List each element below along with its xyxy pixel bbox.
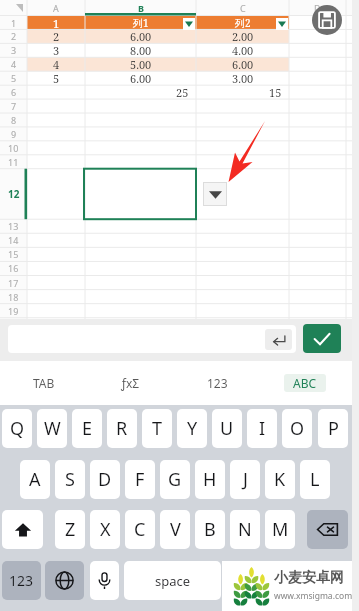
staticText: A bbox=[29, 467, 41, 492]
button[interactable]: K bbox=[265, 460, 295, 499]
button[interactable]: O bbox=[282, 409, 312, 448]
button[interactable]: F bbox=[125, 460, 155, 499]
button[interactable]: M bbox=[265, 510, 295, 549]
button[interactable]: C bbox=[125, 510, 155, 549]
button[interactable]: ABC bbox=[284, 374, 326, 392]
button[interactable]: 14 bbox=[0, 233, 27, 247]
button[interactable]: Z bbox=[55, 510, 85, 549]
staticText: 10 bbox=[8, 142, 19, 154]
staticText: 2 bbox=[11, 30, 17, 42]
staticText: 11 bbox=[8, 156, 19, 168]
button[interactable]: Y bbox=[177, 409, 207, 448]
button[interactable]: ƒxΣ bbox=[87, 361, 174, 405]
button[interactable]: S bbox=[55, 460, 85, 499]
button[interactable]: 5 bbox=[0, 71, 27, 85]
button[interactable]: Filter bbox=[276, 18, 288, 30]
button[interactable]: L bbox=[300, 460, 330, 499]
button[interactable]: 8 bbox=[0, 113, 27, 127]
staticText: 9 bbox=[11, 128, 17, 140]
button[interactable]: 18 bbox=[0, 290, 27, 304]
staticText: Q bbox=[10, 416, 25, 441]
button[interactable]: 19 bbox=[0, 304, 27, 318]
button[interactable]: E bbox=[72, 409, 102, 448]
button[interactable]: U bbox=[212, 409, 242, 448]
button[interactable]: A bbox=[20, 460, 50, 499]
staticText: V bbox=[170, 517, 181, 542]
staticText: 1 bbox=[53, 16, 60, 30]
button[interactable]: 9 bbox=[0, 127, 27, 141]
button[interactable]: 17 bbox=[0, 276, 27, 290]
button[interactable]: Return bbox=[273, 561, 347, 600]
button[interactable]: space bbox=[124, 561, 221, 600]
button[interactable]: B bbox=[85, 0, 196, 16]
button[interactable]: Confirm bbox=[303, 324, 341, 353]
staticText: A bbox=[53, 2, 59, 14]
button[interactable]: 3 bbox=[0, 43, 27, 57]
button[interactable]: G bbox=[160, 460, 190, 499]
staticText: J bbox=[243, 467, 248, 492]
button[interactable]: 123 bbox=[174, 361, 261, 405]
button[interactable]: C bbox=[196, 0, 289, 16]
staticText: TAB bbox=[33, 375, 55, 391]
button[interactable]: N bbox=[230, 510, 260, 549]
button[interactable]: Enter bbox=[265, 329, 292, 350]
button[interactable]: X bbox=[90, 510, 120, 549]
staticText: T bbox=[152, 416, 163, 441]
staticText: K bbox=[274, 467, 286, 492]
button[interactable]: 1 bbox=[0, 16, 27, 30]
staticText: W bbox=[44, 416, 61, 441]
staticText: U bbox=[220, 416, 234, 441]
staticText: 5.00 bbox=[130, 57, 152, 71]
staticText: L bbox=[310, 467, 320, 492]
staticText: 8.00 bbox=[130, 43, 152, 57]
staticText: 7 bbox=[11, 100, 17, 112]
staticText: G bbox=[168, 467, 182, 492]
button[interactable]: H bbox=[195, 460, 225, 499]
button[interactable]: R bbox=[107, 409, 137, 448]
button[interactable]: V bbox=[160, 510, 190, 549]
button[interactable]: T bbox=[142, 409, 172, 448]
button[interactable]: Save bbox=[312, 5, 342, 35]
staticText: www.xmsigma.com bbox=[274, 590, 353, 602]
button[interactable]: I bbox=[247, 409, 277, 448]
button[interactable]: A bbox=[27, 0, 85, 16]
button[interactable]: TAB bbox=[0, 361, 87, 405]
staticText: 4 bbox=[53, 57, 60, 71]
button[interactable]: Filter bbox=[183, 18, 195, 30]
staticText: 18 bbox=[8, 291, 19, 303]
staticText: D bbox=[314, 2, 321, 14]
staticText: H bbox=[203, 467, 217, 492]
button[interactable]: Language bbox=[45, 561, 84, 600]
button[interactable]: J bbox=[230, 460, 260, 499]
staticText: I bbox=[259, 416, 266, 441]
staticText: 列2 bbox=[235, 16, 251, 30]
staticText: 12 bbox=[8, 187, 20, 201]
button[interactable]: 12 bbox=[0, 169, 27, 219]
button[interactable]: W bbox=[37, 409, 67, 448]
button[interactable]: Voice input bbox=[90, 561, 119, 600]
button[interactable]: B bbox=[195, 510, 225, 549]
button[interactable]: Numbers bbox=[2, 561, 41, 600]
button[interactable]: Backspace bbox=[307, 510, 348, 549]
button[interactable]: 15 bbox=[0, 247, 27, 261]
staticText: X bbox=[100, 517, 111, 542]
button[interactable]: 2 bbox=[0, 29, 27, 43]
button[interactable]: 7 bbox=[0, 99, 27, 113]
button[interactable]: Enter bbox=[8, 325, 296, 353]
button[interactable]: Q bbox=[2, 409, 32, 448]
button[interactable]: D bbox=[289, 0, 346, 16]
button[interactable]: 16 bbox=[0, 261, 27, 275]
button[interactable]: 6 bbox=[0, 85, 27, 99]
button[interactable]: 4 bbox=[0, 57, 27, 71]
button[interactable]: 10 bbox=[0, 141, 27, 155]
staticText: 3 bbox=[11, 44, 17, 56]
button[interactable]: 13 bbox=[0, 219, 27, 233]
button[interactable]: Open dropdown bbox=[203, 182, 227, 206]
button[interactable]: P bbox=[318, 409, 348, 448]
staticText: space bbox=[155, 572, 191, 590]
staticText: O bbox=[290, 416, 305, 441]
staticText: 列1 bbox=[133, 16, 149, 30]
button[interactable]: 11 bbox=[0, 155, 27, 169]
button[interactable]: Shift bbox=[2, 510, 43, 549]
button[interactable]: D bbox=[90, 460, 120, 499]
